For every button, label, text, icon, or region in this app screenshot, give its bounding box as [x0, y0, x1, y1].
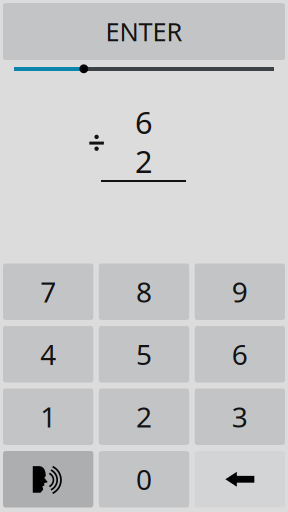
- staticText: 0: [136, 461, 152, 498]
- button[interactable]: 6: [195, 326, 285, 382]
- button[interactable]: 8: [99, 263, 189, 320]
- staticText: ENTER: [105, 15, 182, 48]
- button[interactable]: Speak the problem aloud: [3, 451, 93, 507]
- button[interactable]: 7: [3, 263, 93, 320]
- button[interactable]: 1: [3, 388, 93, 445]
- staticText: 7: [40, 273, 56, 310]
- staticText: 2: [136, 398, 152, 435]
- button[interactable]: ENTER: [3, 3, 285, 60]
- button[interactable]: 4: [3, 326, 93, 382]
- staticText: 5: [136, 336, 152, 373]
- staticText: 9: [232, 273, 248, 310]
- staticText: 4: [40, 336, 56, 373]
- button[interactable]: 2: [99, 388, 189, 445]
- staticText: 2: [135, 141, 153, 181]
- button[interactable]: 5: [99, 326, 189, 382]
- button[interactable]: Session progress: [14, 62, 274, 76]
- button[interactable]: 9: [195, 263, 285, 320]
- staticText: 6: [232, 336, 248, 373]
- staticText: 8: [136, 273, 152, 310]
- button[interactable]: 3: [195, 388, 285, 445]
- staticText: 3: [232, 398, 248, 435]
- button[interactable]: Delete: [195, 451, 285, 507]
- staticText: 1: [40, 398, 56, 435]
- staticText: 6: [135, 102, 153, 142]
- button[interactable]: 0: [99, 451, 189, 507]
